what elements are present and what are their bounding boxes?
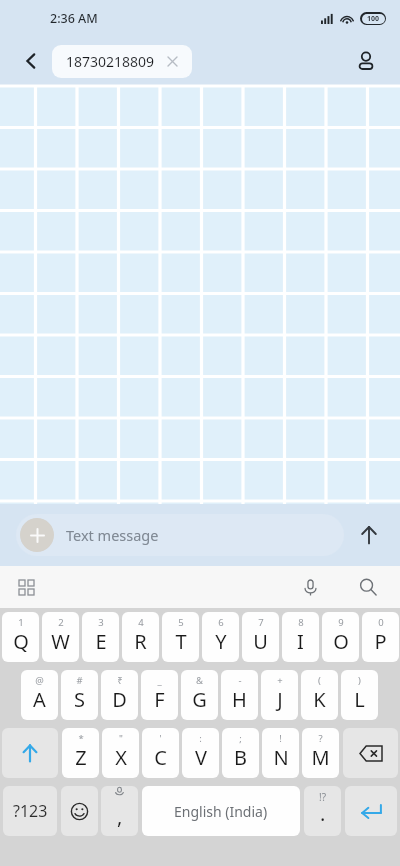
staticText: C [154, 744, 167, 771]
button[interactable]: Enter [345, 786, 397, 836]
button[interactable]: 4 [122, 612, 159, 662]
staticText: B [234, 744, 247, 771]
staticText: T [175, 628, 187, 655]
button[interactable]: Shift [2, 728, 58, 778]
staticText: ₹ [117, 674, 123, 687]
staticText: Z [75, 744, 87, 771]
button[interactable]: Send [348, 514, 390, 556]
button[interactable]: Search [352, 571, 384, 603]
staticText: 100 [367, 14, 380, 24]
button[interactable]: ( [301, 670, 338, 720]
staticText: ) [358, 674, 361, 687]
staticText: # [76, 674, 83, 687]
staticText: _ [157, 674, 162, 687]
button[interactable]: & [181, 670, 218, 720]
staticText: ' [159, 732, 162, 745]
button[interactable]: ? [302, 728, 339, 778]
staticText: M [311, 744, 330, 771]
staticText: 1 [18, 616, 24, 629]
button[interactable]: 2 [42, 612, 79, 662]
button[interactable]: " [102, 728, 139, 778]
staticText: E [95, 628, 107, 655]
other: Shift [20, 743, 40, 763]
staticText: - [238, 674, 242, 687]
button[interactable]: English (India) [142, 786, 300, 836]
staticText: A [33, 686, 46, 713]
staticText: 18730218809 [66, 52, 155, 71]
staticText: J [277, 686, 283, 713]
staticText: Y [215, 628, 227, 655]
staticText: 3 [98, 616, 104, 629]
staticText: K [313, 686, 326, 713]
button[interactable]: : [182, 728, 219, 778]
button[interactable]: @ [21, 670, 58, 720]
button[interactable]: # [61, 670, 98, 720]
staticText: 6 [218, 616, 224, 629]
button[interactable]: _ [141, 670, 178, 720]
button[interactable]: * [62, 728, 99, 778]
button[interactable]: 18730218809 [52, 45, 192, 78]
button[interactable]: 8 [282, 612, 319, 662]
staticText: U [253, 628, 268, 655]
staticText: & [196, 674, 203, 687]
staticText: * [78, 732, 84, 745]
staticText: ( [318, 674, 321, 687]
staticText: S [74, 686, 85, 713]
button[interactable]: ₹ [101, 670, 138, 720]
other: Enter [360, 803, 382, 819]
staticText: ; [239, 732, 242, 745]
staticText: I [297, 628, 304, 655]
button[interactable]: ; [222, 728, 259, 778]
staticText: 8 [298, 616, 304, 629]
staticText: Text message [66, 525, 159, 545]
button[interactable]: 9 [322, 612, 359, 662]
button[interactable]: ) [341, 670, 378, 720]
button[interactable]: , [101, 786, 138, 836]
button[interactable]: 6 [202, 612, 239, 662]
button[interactable]: ' [142, 728, 179, 778]
button[interactable]: 5 [162, 612, 199, 662]
staticText: " [119, 732, 123, 745]
button[interactable]: Voice input [294, 571, 326, 603]
button[interactable]: Emoji [61, 786, 98, 836]
button[interactable]: Keyboard menu [10, 571, 42, 603]
button[interactable]: 7 [242, 612, 279, 662]
staticText: O [333, 628, 349, 655]
button[interactable]: Add attachment [20, 518, 54, 552]
button[interactable]: 1 [2, 612, 39, 662]
staticText: . [320, 800, 326, 827]
staticText: : [199, 732, 202, 745]
button[interactable]: - [221, 670, 258, 720]
other: Emoji [70, 802, 89, 821]
staticText: English (India) [174, 802, 268, 821]
staticText: , [117, 803, 123, 830]
staticText: 4 [138, 616, 144, 629]
staticText: L [354, 686, 365, 713]
button[interactable]: Contact details [346, 41, 386, 81]
button[interactable]: Back [12, 42, 50, 80]
button[interactable]: + [261, 670, 298, 720]
staticText: ?123 [13, 800, 48, 822]
staticText: G [192, 686, 207, 713]
staticText: X [115, 744, 127, 771]
staticText: !? [319, 790, 327, 804]
other: Backspace [359, 745, 383, 762]
button[interactable]: 3 [82, 612, 119, 662]
button[interactable]: !? [304, 786, 341, 836]
staticText: 2 [58, 616, 64, 629]
button[interactable]: Add attachment [16, 514, 344, 556]
staticText: V [195, 744, 207, 771]
button[interactable]: 0 [362, 612, 399, 662]
button[interactable]: ?123 [3, 786, 57, 836]
staticText: R [134, 628, 147, 655]
staticText: F [154, 686, 165, 713]
staticText: + [277, 674, 283, 687]
staticText: H [232, 686, 247, 713]
staticText: ? [318, 732, 323, 745]
button[interactable]: Backspace [343, 728, 398, 778]
staticText: 0 [378, 616, 384, 629]
button[interactable]: ! [262, 728, 299, 778]
staticText: ! [279, 732, 282, 745]
staticText: Q [13, 628, 29, 655]
staticText: W [51, 628, 70, 655]
